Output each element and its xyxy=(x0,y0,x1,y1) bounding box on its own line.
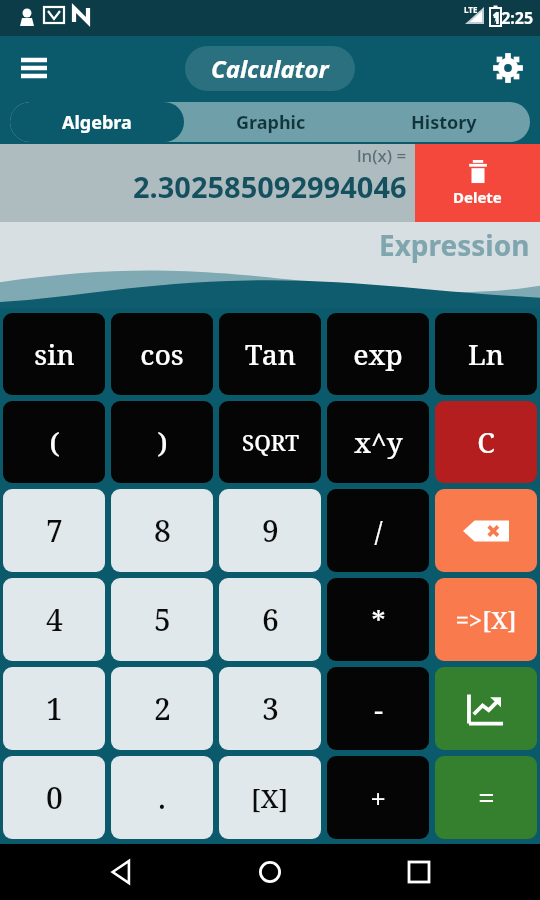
button[interactable]: [X] xyxy=(219,756,321,839)
staticText: Algebra xyxy=(62,110,132,135)
button[interactable]: 9 xyxy=(219,489,321,572)
staticText: 1 xyxy=(46,688,63,729)
button[interactable]: Menu xyxy=(10,44,58,92)
button[interactable]: Calculator xyxy=(185,46,355,91)
button[interactable]: 5 xyxy=(111,578,213,661)
button[interactable]: * xyxy=(327,578,429,661)
staticText: Tan xyxy=(245,335,296,373)
staticText: 7 xyxy=(46,510,63,551)
staticText: Ln xyxy=(468,335,504,373)
staticText: Expression xyxy=(379,226,530,264)
button[interactable]: 2 xyxy=(111,667,213,750)
button[interactable]: 6 xyxy=(219,578,321,661)
button[interactable]: ) xyxy=(111,401,213,483)
staticText: * xyxy=(371,601,386,639)
button[interactable]: / xyxy=(327,489,429,572)
staticText: Calculator xyxy=(211,52,329,85)
button[interactable]: sin xyxy=(3,313,105,395)
button[interactable]: Home xyxy=(242,844,298,900)
button[interactable]: exp xyxy=(327,313,429,395)
staticText: 3 xyxy=(262,688,279,729)
staticText: 12:25 xyxy=(492,7,534,29)
staticText: [X] xyxy=(251,780,289,815)
staticText: SQRT xyxy=(242,427,299,457)
button[interactable]: Graph xyxy=(435,667,537,750)
staticText: - xyxy=(374,690,383,728)
staticText: History xyxy=(411,110,477,135)
staticText: 9 xyxy=(262,510,279,551)
staticText: exp xyxy=(353,335,403,373)
staticText: = xyxy=(478,777,495,818)
staticText: C xyxy=(477,423,495,461)
staticText: 2 xyxy=(154,688,171,729)
staticText: 6 xyxy=(262,599,279,640)
staticText: + xyxy=(370,779,386,817)
staticText: 4 xyxy=(46,599,63,640)
button[interactable]: + xyxy=(327,756,429,839)
button[interactable]: Backspace xyxy=(435,489,537,572)
staticText: =>[X] xyxy=(455,603,517,636)
staticText: x^y xyxy=(354,423,403,461)
button[interactable]: - xyxy=(327,667,429,750)
staticText: Delete xyxy=(453,187,502,207)
staticText: 0 xyxy=(46,777,63,818)
staticText: cos xyxy=(140,335,184,373)
button[interactable]: C xyxy=(435,401,537,483)
staticText: ln(x) = xyxy=(357,144,407,167)
button[interactable]: 8 xyxy=(111,489,213,572)
button[interactable]: 7 xyxy=(3,489,105,572)
staticText: Graphic xyxy=(236,110,306,135)
staticText: LTE xyxy=(464,4,478,15)
staticText: . xyxy=(158,777,166,818)
button[interactable]: Delete xyxy=(415,144,540,222)
button[interactable]: 0 xyxy=(3,756,105,839)
button[interactable]: Back xyxy=(93,844,149,900)
button[interactable]: cos xyxy=(111,313,213,395)
button[interactable]: 4 xyxy=(3,578,105,661)
staticText: ( xyxy=(49,423,60,461)
button[interactable]: = xyxy=(435,756,537,839)
button[interactable]: =>[X] xyxy=(435,578,537,661)
staticText: sin xyxy=(34,335,75,373)
button[interactable]: x^y xyxy=(327,401,429,483)
button[interactable]: Algebra xyxy=(10,102,184,142)
button[interactable]: SQRT xyxy=(219,401,321,483)
staticText: 8 xyxy=(154,510,171,551)
button[interactable]: Tan xyxy=(219,313,321,395)
staticText: ) xyxy=(157,423,168,461)
button[interactable]: Settings xyxy=(484,44,532,92)
button[interactable]: History xyxy=(357,102,530,142)
button[interactable]: Graphic xyxy=(184,102,357,142)
button[interactable]: Recents xyxy=(391,844,447,900)
staticText: / xyxy=(374,512,383,550)
staticText: 5 xyxy=(154,599,171,640)
button[interactable]: Ln xyxy=(435,313,537,395)
button[interactable]: 3 xyxy=(219,667,321,750)
button[interactable]: . xyxy=(111,756,213,839)
button[interactable]: ( xyxy=(3,401,105,483)
staticText: 2.302585092994046 xyxy=(133,167,407,206)
button[interactable]: 1 xyxy=(3,667,105,750)
